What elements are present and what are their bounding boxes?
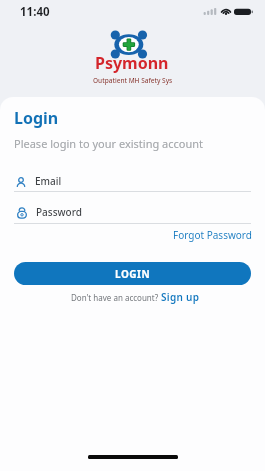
staticText: Password (36, 205, 82, 219)
staticText: Login (14, 107, 59, 129)
button[interactable]: Password (14, 204, 251, 224)
button[interactable]: Email (14, 173, 251, 192)
staticText: Please login to your existing account (14, 136, 204, 151)
staticText: Forgot Password (173, 228, 252, 242)
staticText: Sign up (161, 290, 200, 304)
staticText: Outpatient MH Safety Sys (93, 76, 173, 85)
staticText: 11:40 (20, 4, 50, 20)
button[interactable]: LOGIN (14, 262, 251, 285)
staticText: Don't have an account? (71, 292, 161, 303)
staticText: Email (35, 174, 62, 188)
staticText: Psymonn (95, 52, 169, 74)
staticText: LOGIN (115, 267, 151, 281)
button[interactable]: Sign up (161, 290, 200, 304)
button[interactable]: Forgot Password (173, 228, 252, 242)
